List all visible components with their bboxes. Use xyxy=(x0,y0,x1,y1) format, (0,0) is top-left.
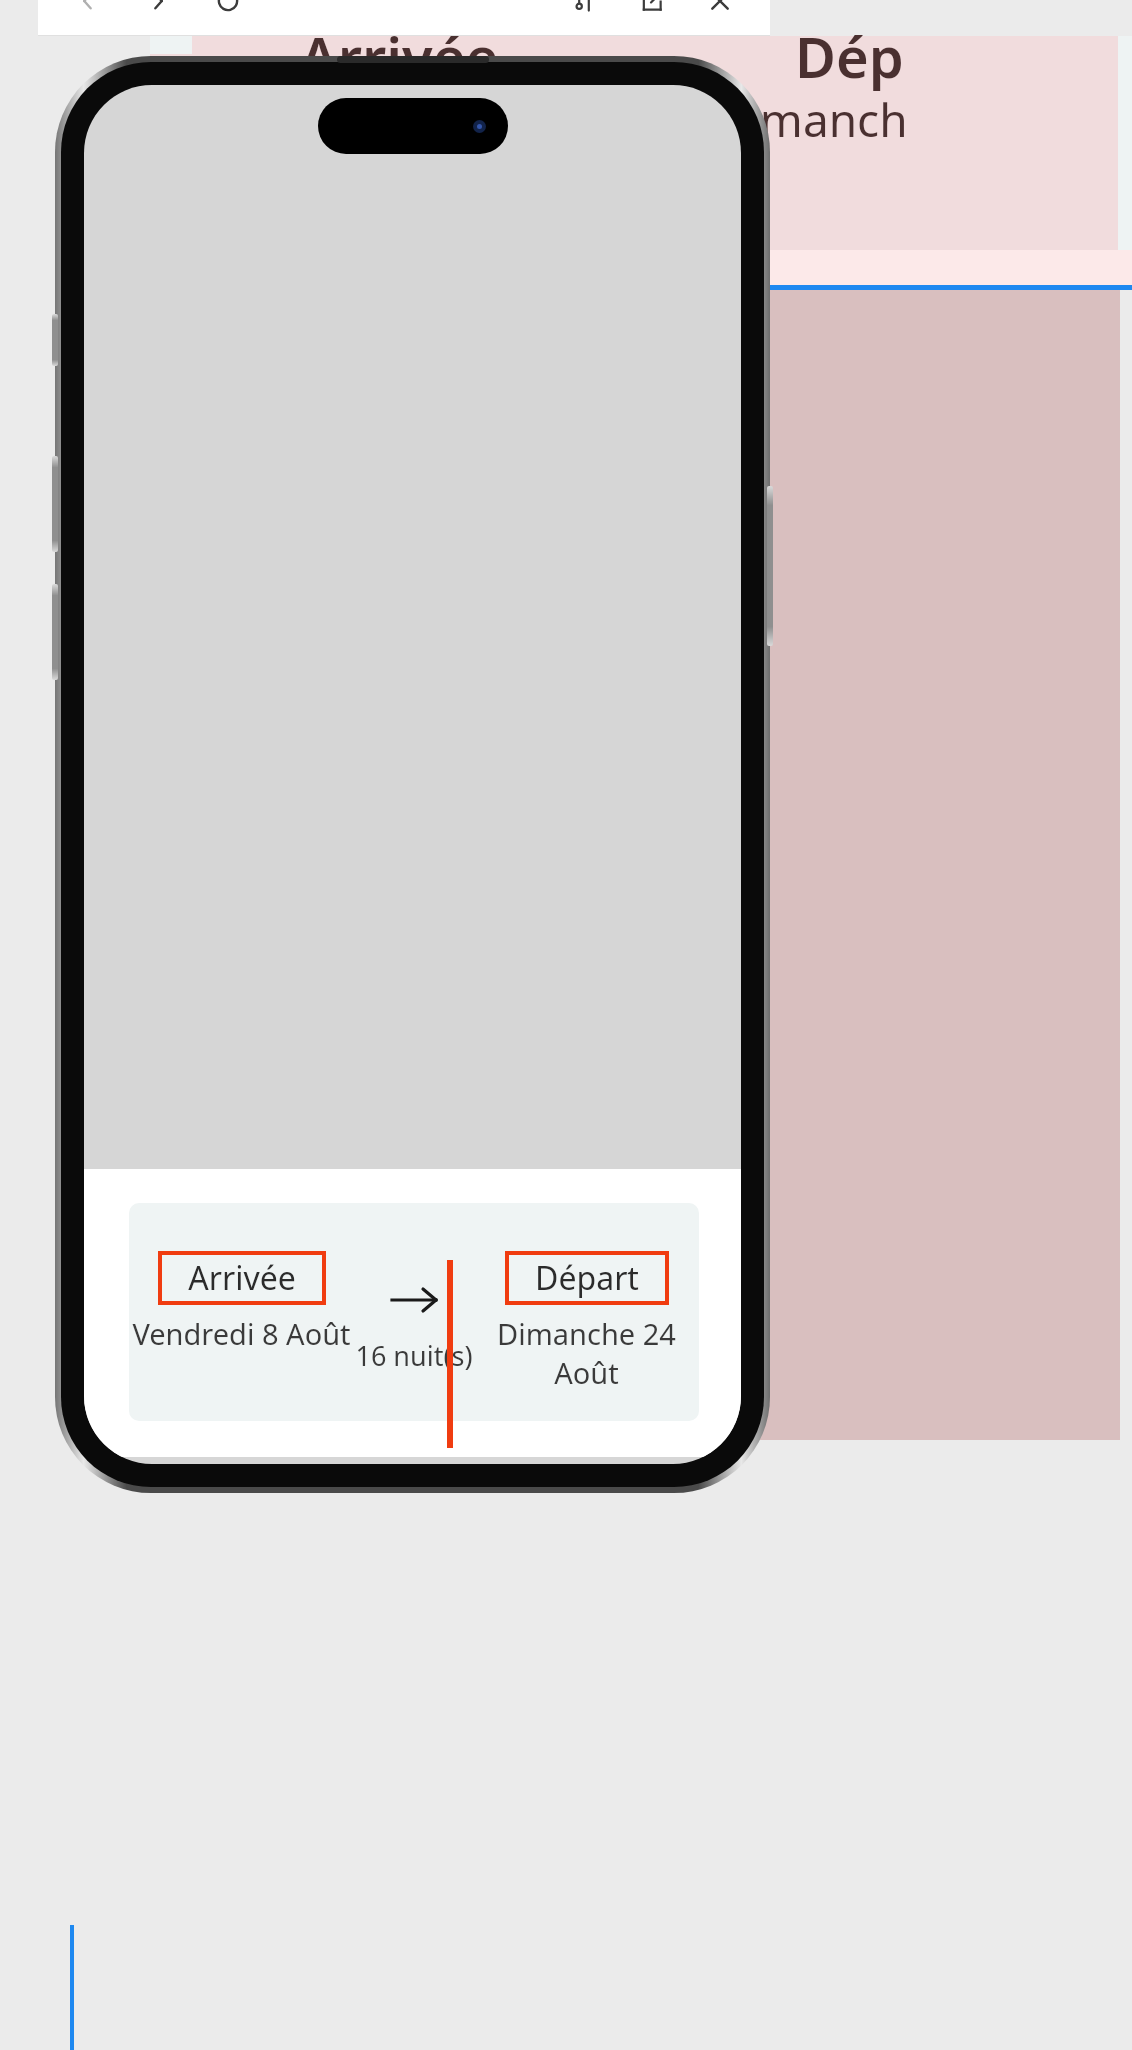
button[interactable]: Arrivée xyxy=(129,1203,699,1421)
button[interactable]: Close xyxy=(698,0,742,23)
button[interactable]: Arrivée xyxy=(188,1256,296,1300)
staticText: Dimanche 24 Août xyxy=(474,1314,699,1392)
button[interactable]: Open in new window xyxy=(630,0,674,23)
staticText: Arrivée xyxy=(300,18,499,94)
staticText: imanch xyxy=(748,88,908,151)
staticText: Vendredi 8 Août xyxy=(132,1314,351,1353)
staticText: Arrivée xyxy=(188,1256,296,1300)
button[interactable]: Départ xyxy=(535,1256,639,1300)
staticText: 16 nuit(s) xyxy=(355,1337,473,1374)
button[interactable]: Settings xyxy=(562,0,606,23)
staticText: Dép xyxy=(795,18,904,94)
staticText: Départ xyxy=(535,1256,639,1300)
button[interactable]: Back xyxy=(66,0,110,23)
button[interactable]: Reload xyxy=(206,0,250,23)
button[interactable]: Forward xyxy=(136,0,180,23)
